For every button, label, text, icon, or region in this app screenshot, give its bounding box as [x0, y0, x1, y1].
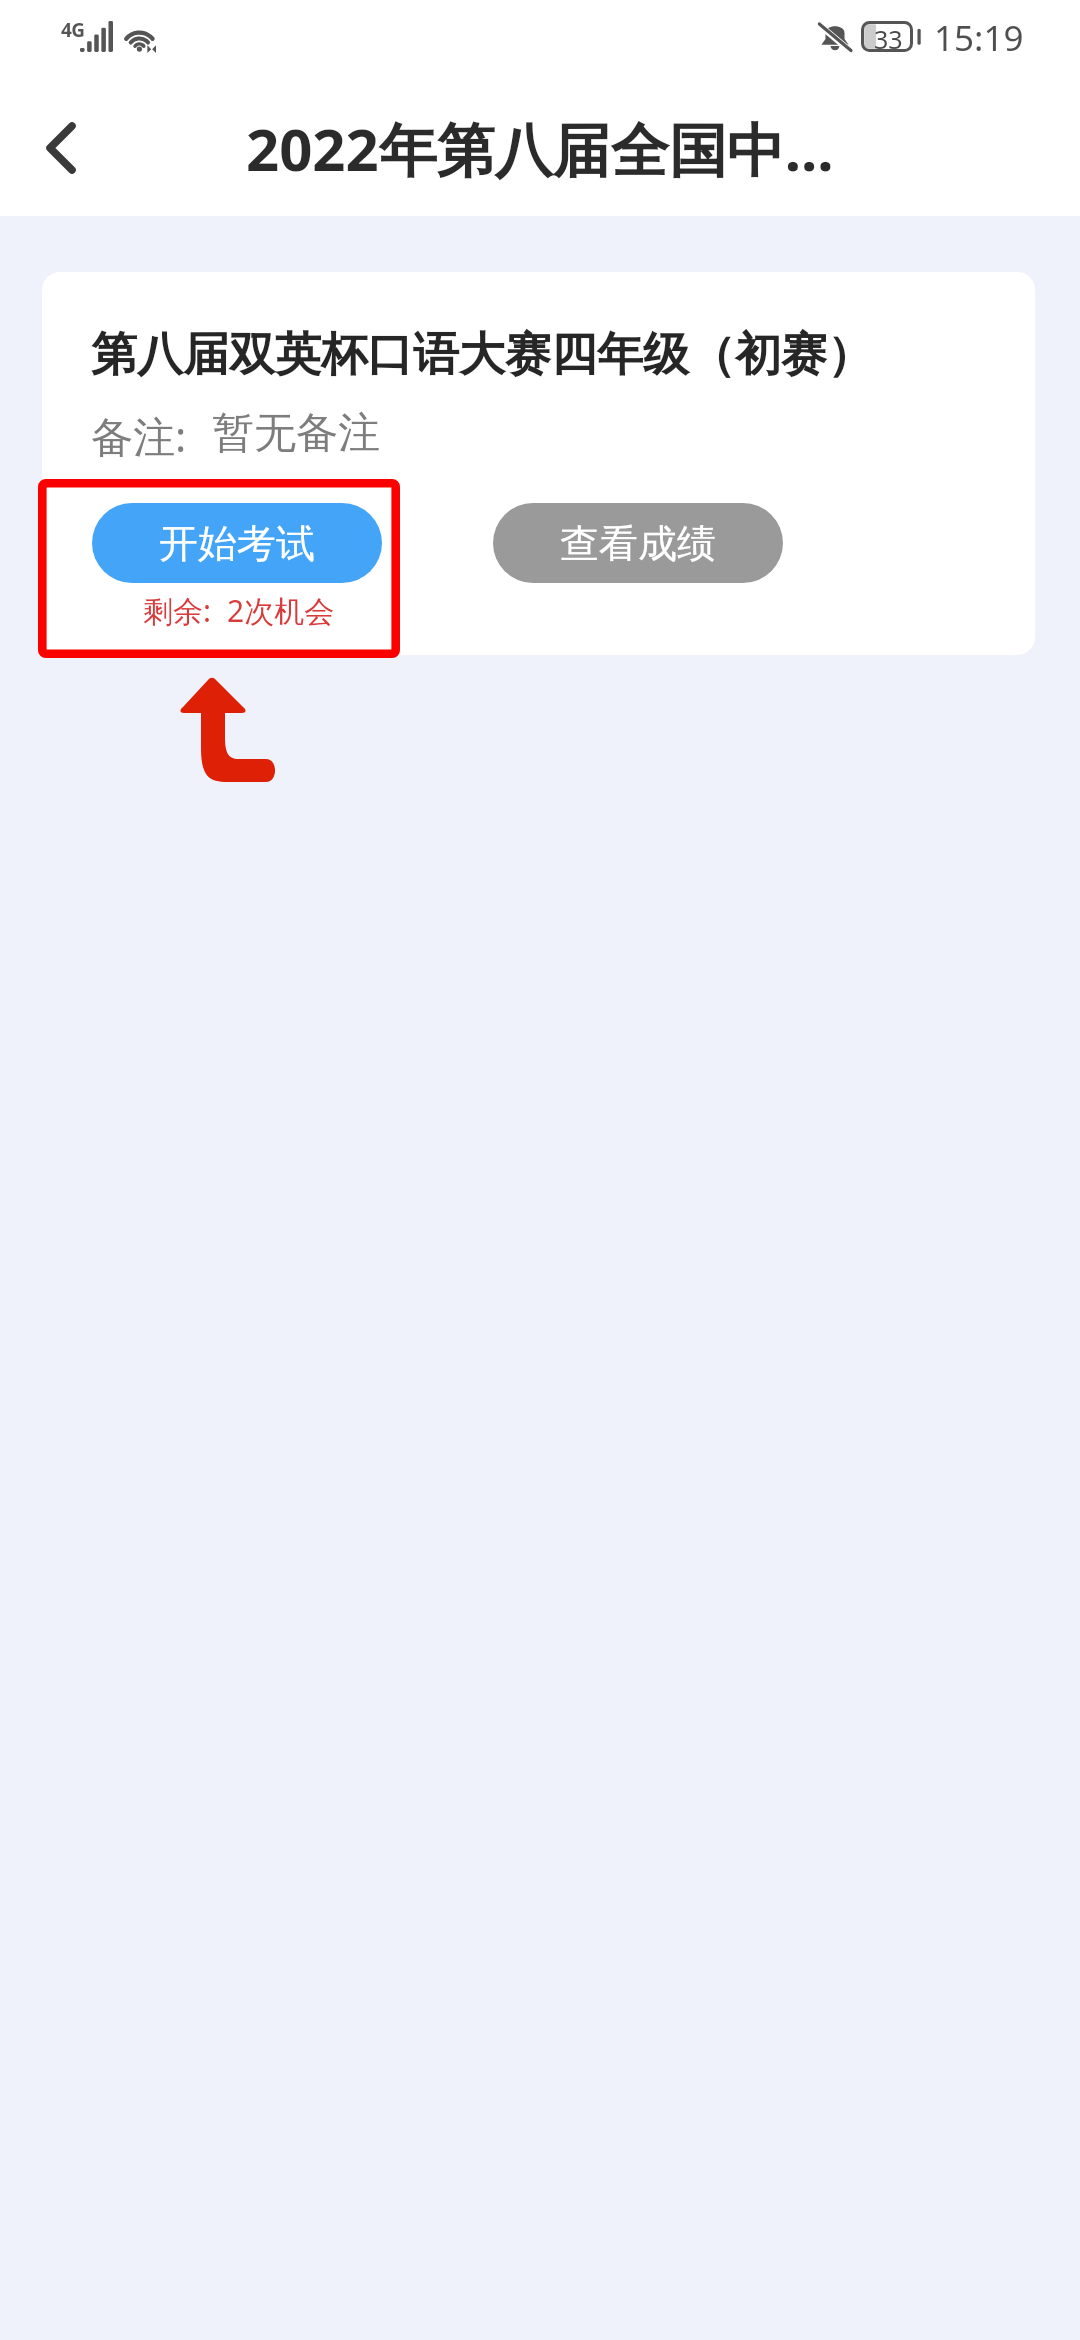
button[interactable]: 开始考试 [92, 503, 382, 583]
staticText: 暂无备注 [212, 407, 380, 460]
staticText: 33 [874, 22, 903, 53]
staticText: 15:19 [934, 14, 1024, 62]
staticText: 4G [61, 17, 85, 43]
staticText: 2022年第八届全国中... [246, 109, 834, 188]
staticText: 备注: [91, 407, 187, 464]
staticText: 查看成绩 [560, 519, 716, 568]
staticText: 剩余: [143, 590, 212, 631]
staticText: 第八届双英杯口语大赛四年级（初赛） [91, 326, 873, 384]
button[interactable]: Back [6, 93, 116, 203]
button[interactable]: 查看成绩 [493, 503, 783, 583]
staticText: 2次机会 [227, 590, 335, 631]
staticText: 开始考试 [159, 519, 315, 568]
